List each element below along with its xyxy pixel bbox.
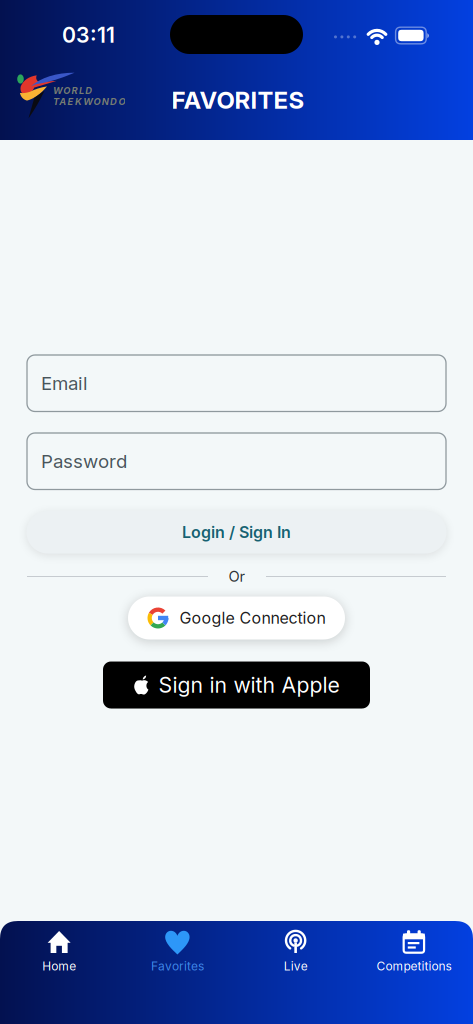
- staticText: FAVORITES: [171, 86, 304, 114]
- staticText: WORLD: [53, 85, 92, 96]
- staticText: Google Connection: [179, 609, 325, 627]
- staticText: 03:11: [62, 22, 115, 48]
- button[interactable]: Login / Sign In: [26, 511, 446, 553]
- staticText: TAEKWONDO: [53, 96, 125, 107]
- staticText: Email: [41, 372, 88, 394]
- button[interactable]: Competitions: [355, 930, 473, 973]
- staticText: Or: [228, 568, 245, 585]
- button[interactable]: Google Connection: [128, 596, 345, 639]
- staticText: Login / Sign In: [182, 523, 291, 542]
- button[interactable]: Password: [27, 433, 446, 489]
- staticText: Favorites: [151, 959, 204, 973]
- staticText: Sign in with Apple: [158, 672, 339, 698]
- staticText: Password: [41, 450, 127, 472]
- button[interactable]: Favorites: [118, 930, 236, 973]
- staticText: Home: [42, 959, 76, 973]
- staticText: Competitions: [376, 959, 451, 973]
- button[interactable]: Live: [236, 930, 355, 973]
- button[interactable]: Sign in with Apple: [103, 661, 370, 708]
- staticText: Live: [284, 959, 308, 973]
- button[interactable]: Email: [27, 355, 446, 411]
- button[interactable]: Home: [0, 930, 118, 973]
